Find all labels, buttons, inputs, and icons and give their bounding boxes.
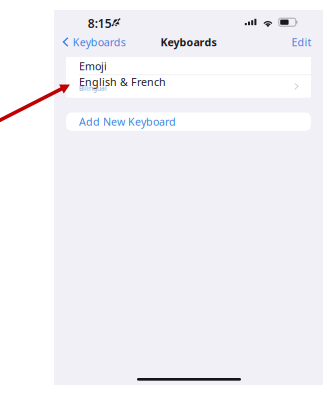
- button[interactable]: Emoji: [66, 57, 311, 75]
- staticText: Add New Keyboard: [79, 115, 176, 129]
- staticText: Keyboards: [73, 35, 126, 49]
- staticText: Edit: [291, 35, 311, 49]
- button[interactable]: Edit: [54, 35, 323, 49]
- staticText: English & French: [79, 75, 166, 89]
- staticText: Keyboards: [160, 35, 216, 49]
- staticText: Emoji: [79, 59, 107, 73]
- staticText: Bilingual: [79, 84, 107, 93]
- button[interactable]: Add New Keyboard: [66, 112, 311, 131]
- button[interactable]: Keyboards: [54, 35, 174, 49]
- button[interactable]: English & French: [66, 75, 311, 98]
- staticText: 8:15: [88, 15, 112, 31]
